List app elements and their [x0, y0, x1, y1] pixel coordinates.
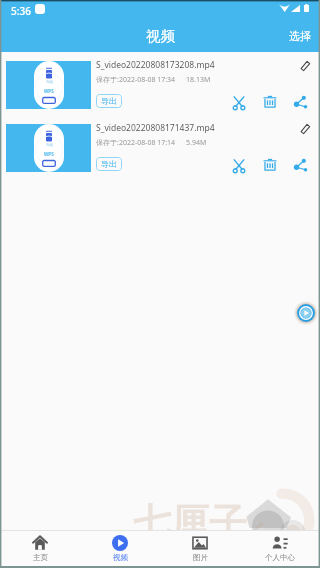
- staticText: 保存于:2022-08-08 17:34: [96, 75, 176, 85]
- button[interactable]: Delete: [263, 95, 277, 109]
- staticText: 无线: [46, 80, 53, 84]
- button[interactable]: 个人中心: [240, 530, 320, 568]
- button[interactable]: Cut: [232, 96, 246, 110]
- button[interactable]: 选择: [280, 23, 320, 49]
- staticText: S_video20220808171437.mp4: [96, 122, 215, 134]
- staticText: 18.13M: [186, 75, 211, 85]
- staticText: 5:36: [11, 4, 31, 18]
- staticText: 选择: [289, 29, 311, 43]
- button[interactable]: Delete: [263, 158, 277, 172]
- staticText: 七厘子: [133, 499, 247, 547]
- button[interactable]: 无线: [0, 124, 320, 173]
- button[interactable]: 主页: [0, 530, 80, 568]
- staticText: 导出: [101, 159, 117, 169]
- staticText: 图片: [193, 553, 208, 562]
- staticText: 主页: [33, 553, 48, 562]
- staticText: S_video20220808173208.mp4: [96, 59, 215, 71]
- staticText: WPS: [44, 151, 54, 157]
- button[interactable]: Edit: [300, 123, 311, 134]
- staticText: 5.94M: [186, 138, 207, 148]
- staticText: 导出: [101, 96, 117, 106]
- button[interactable]: 无线: [0, 61, 320, 110]
- button[interactable]: 图片: [160, 530, 240, 568]
- staticText: 视频: [146, 27, 175, 45]
- button[interactable]: 导出: [96, 94, 122, 108]
- staticText: 个人中心: [265, 553, 295, 562]
- button[interactable]: Cut: [232, 159, 246, 173]
- staticText: 视频: [113, 553, 128, 562]
- staticText: WPS: [44, 88, 54, 94]
- button[interactable]: Share: [294, 95, 308, 109]
- staticText: 保存于:2022-08-08 17:14: [96, 138, 176, 148]
- button[interactable]: Edit: [300, 60, 311, 71]
- staticText: 无线: [46, 143, 53, 147]
- button[interactable]: 导出: [96, 157, 122, 171]
- button[interactable]: 视频: [80, 530, 160, 568]
- button[interactable]: Share: [294, 158, 308, 172]
- button[interactable]: Play: [294, 301, 318, 325]
